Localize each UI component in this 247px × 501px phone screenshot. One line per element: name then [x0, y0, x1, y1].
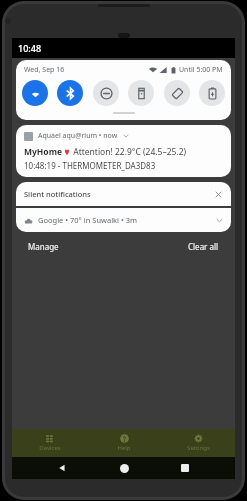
- staticText: Manage: [28, 241, 59, 252]
- button[interactable]: Google • 70° in Suwalki • 3m: [16, 208, 231, 232]
- button[interactable]: Manage: [24, 238, 63, 255]
- button[interactable]: Clear all: [184, 238, 223, 255]
- button[interactable]: Auto rotate: [164, 80, 190, 106]
- button[interactable]: Do Not Disturb: [93, 80, 119, 106]
- staticText: Help: [117, 444, 131, 452]
- staticText: Silent notifications: [24, 189, 91, 199]
- button[interactable]: Help: [87, 429, 161, 457]
- button[interactable]: Back: [51, 457, 73, 479]
- button[interactable]: Aquael aqu@rium • now: [16, 125, 231, 177]
- staticText: Clear all: [188, 241, 219, 252]
- staticText: Google • 70° in Suwalki • 3m: [38, 215, 138, 225]
- staticText: Settings: [187, 444, 210, 452]
- button[interactable]: Wi-Fi: [22, 80, 48, 106]
- staticText: Aquael aqu@rium • now: [38, 131, 118, 141]
- staticText: 10:48:19 - THERMOMETER_DA3D83: [24, 160, 156, 171]
- staticText: Wed, Sep 16: [24, 65, 65, 75]
- staticText: Until 5:00 PM: [179, 65, 223, 75]
- button[interactable]: Bluetooth: [57, 80, 83, 106]
- button[interactable]: Devices: [12, 429, 87, 457]
- button[interactable]: Battery Saver: [199, 80, 225, 106]
- staticText: MyHome: [24, 146, 63, 158]
- button[interactable]: Home: [113, 457, 135, 479]
- staticText: 10:48: [18, 42, 42, 54]
- button[interactable]: Settings: [161, 429, 235, 457]
- button[interactable]: Silent notifications: [16, 182, 231, 206]
- button[interactable]: Dismiss silent notifications: [213, 189, 223, 199]
- button[interactable]: Flashlight: [128, 80, 154, 106]
- staticText: Attention! 22.9°C (24.5–25.2): [71, 146, 187, 158]
- staticText: Devices: [39, 444, 61, 452]
- button[interactable]: Recent apps: [174, 457, 196, 479]
